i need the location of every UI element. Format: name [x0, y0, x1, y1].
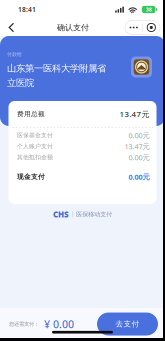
staticText: 您还需支付：: [9, 321, 39, 327]
staticText: 其他抵扣金额: [17, 154, 53, 161]
staticText: CHS: [53, 209, 69, 220]
staticText: 个人账户支付: [17, 143, 53, 150]
staticText: 现金支付: [17, 173, 45, 181]
button[interactable]: 去支付: [97, 312, 158, 335]
staticText: 18:41: [18, 5, 36, 14]
staticText: 0.00元: [128, 130, 149, 140]
staticText: ¥ 0.00: [44, 317, 74, 331]
staticText: 立医院: [7, 77, 34, 89]
staticText: 13.47元: [124, 141, 149, 151]
staticText: 13.47元: [119, 109, 149, 119]
staticText: 医保移动支付: [76, 210, 112, 218]
staticText: 去支付: [115, 319, 139, 329]
staticText: 0.00元: [128, 172, 149, 182]
staticText: 付款给: [7, 51, 22, 57]
staticText: 0.00元: [128, 152, 149, 162]
button[interactable]: Close: [143, 20, 160, 34]
staticText: 38: [146, 6, 152, 13]
staticText: 费用总额: [17, 110, 45, 118]
staticText: 确认支付: [57, 22, 89, 33]
staticText: 医保基金支付: [17, 132, 53, 139]
staticText: 山东第一医科大学附属省: [7, 62, 106, 74]
button[interactable]: More: [125, 20, 142, 34]
button[interactable]: Back: [2, 20, 21, 35]
